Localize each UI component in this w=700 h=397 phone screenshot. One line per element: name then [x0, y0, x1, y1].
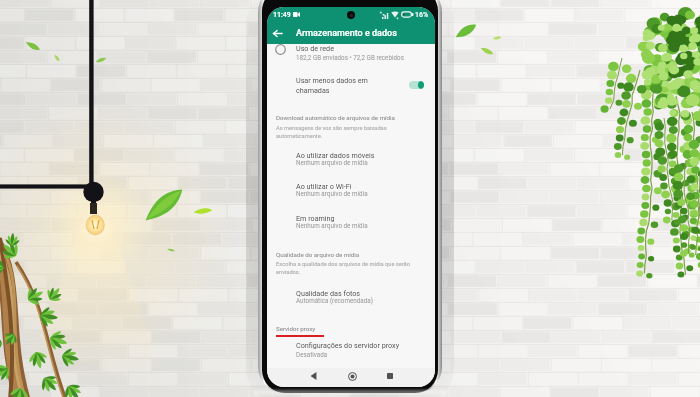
- staticText: Escolha a qualidade dos arquivos de mídi…: [276, 261, 410, 275]
- staticText: Nenhum arquivo de mídia: [296, 159, 368, 166]
- staticText: Usar menos dados em chamadas: [296, 76, 368, 94]
- button[interactable]: Configurações do servidor proxy: [267, 337, 435, 357]
- staticText: Qualidade das fotos: [296, 289, 361, 297]
- staticText: Configurações do servidor proxy: [296, 341, 400, 349]
- button[interactable]: Ao utilizar dados móveis: [267, 147, 435, 167]
- button[interactable]: Usar menos dados em chamadas: [267, 73, 435, 100]
- staticText: Nenhum arquivo de mídia: [296, 222, 368, 229]
- staticText: Armazenamento e dados: [296, 28, 397, 39]
- staticText: Uso de rede: [296, 44, 334, 52]
- staticText: Desativada: [296, 351, 328, 358]
- button[interactable]: Início: [344, 368, 360, 384]
- button[interactable]: Qualidade das fotos: [267, 285, 435, 305]
- button[interactable]: Em roaming: [267, 210, 435, 230]
- staticText: Ao utilizar dados móveis: [296, 151, 375, 159]
- button[interactable]: Ao utilizar o Wi-Fi: [267, 178, 435, 198]
- staticText: Servidor proxy: [276, 325, 316, 332]
- button[interactable]: Voltar: [267, 22, 288, 44]
- staticText: Qualidade do arquivo de mídia: [276, 251, 360, 258]
- staticText: Nenhum arquivo de mídia: [296, 190, 368, 197]
- staticText: Em roaming: [296, 214, 335, 222]
- staticText: As mensagens de voz são sempre baixadas …: [276, 125, 387, 139]
- button[interactable]: Voltar: [305, 368, 321, 384]
- button[interactable]: Recentes: [382, 368, 398, 384]
- staticText: Automática (recomendada): [296, 297, 373, 304]
- staticText: 182,2 GB enviados • 72,2 GB recebidos: [296, 54, 404, 61]
- staticText: Ao utilizar o Wi-Fi: [296, 182, 352, 190]
- button[interactable]: Uso de rede: [267, 40, 435, 65]
- staticText: 16%: [415, 11, 429, 19]
- staticText: Download automático de arquivos de mídia: [276, 114, 395, 121]
- staticText: 11:49: [273, 11, 291, 19]
